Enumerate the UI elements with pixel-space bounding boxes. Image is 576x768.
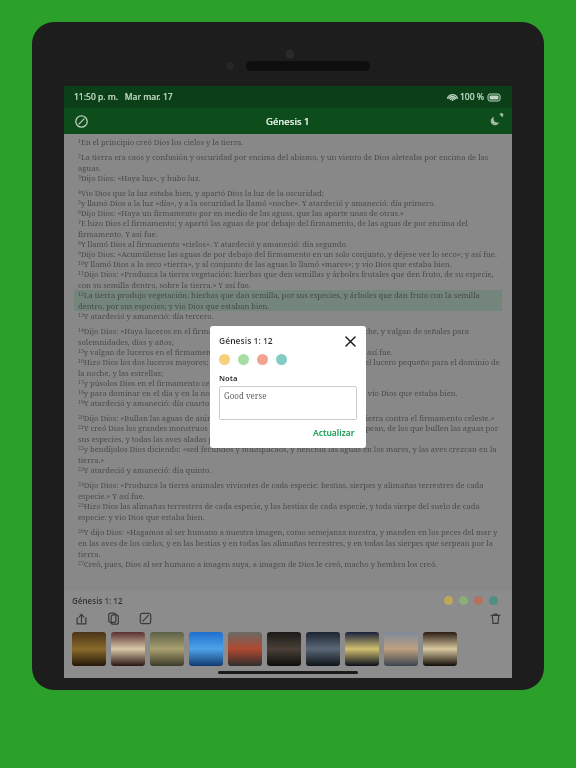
button[interactable]: 4Vio Dios que la luz estaba bien, y apar… <box>74 188 502 198</box>
staticText: 18y para dominar en el día y en la noche… <box>78 388 502 398</box>
staticText: 22y bendíjolos Dios diciendo: «sed fecun… <box>78 444 502 465</box>
staticText: 2La tierra era caos y confusión y oscuri… <box>78 152 502 173</box>
button[interactable]: 25Hizo Dios las alimañas terrestres de c… <box>74 501 502 522</box>
staticText: 12La tierra produjo vegetación: hierbas … <box>78 290 502 311</box>
button[interactable]: 16Hizo Dios los dos luceros mayores; el … <box>74 357 502 378</box>
button[interactable]: 27Creó, pues, Dios al ser humano a image… <box>74 559 502 569</box>
staticText: 6Dijo Dios: «Haya un firmamento por en m… <box>78 208 502 218</box>
button[interactable]: Background image <box>72 632 106 666</box>
button[interactable]: Copy <box>104 609 122 627</box>
staticText: 24Dijo Dios: «Produzca la tierra animale… <box>78 480 502 501</box>
button[interactable]: Background image <box>228 632 262 666</box>
button[interactable]: 26Y dijo Dios: «Hagamos al ser humano a … <box>74 527 502 559</box>
staticText: 8Y llamó Dios al firmamento «cielos». Y … <box>78 239 502 249</box>
button[interactable]: Highlight color <box>238 354 249 365</box>
button[interactable]: 11Dijo Dios: «Produzca la tierra vegetac… <box>74 269 502 290</box>
button[interactable]: Highlight color <box>219 354 230 365</box>
button[interactable]: Highlight color <box>444 596 453 605</box>
button[interactable]: 8Y llamó Dios al firmamento «cielos». Y … <box>74 239 502 249</box>
staticText: 1En el principio creó Dios los cielos y … <box>78 137 502 147</box>
button[interactable]: Close <box>343 334 357 348</box>
button[interactable]: 7E hizo Dios el firmamento; y apartó las… <box>74 218 502 239</box>
staticText: Génesis 1 <box>266 115 310 128</box>
button[interactable]: 5y llamó Dios a la luz «día», y a la osc… <box>74 198 502 208</box>
staticText: 10Y llamó Dios a lo seco «tierra», y al … <box>78 259 502 269</box>
button[interactable]: Background image <box>189 632 223 666</box>
staticText: 11Dijo Dios: «Produzca la tierra vegetac… <box>78 269 502 290</box>
staticText: 15y valgan de luceros en el firmamento c… <box>78 347 502 357</box>
button[interactable]: Highlight color <box>474 596 483 605</box>
staticText: 7E hizo Dios el firmamento; y apartó las… <box>78 218 502 239</box>
button[interactable]: 18y para dominar en el día y en la noche… <box>74 388 502 398</box>
staticText: 17y púsolos Dios en el firmamento celest… <box>78 378 502 388</box>
button[interactable]: Background image <box>150 632 184 666</box>
staticText: 23Y atardeció y amaneció: día quinto. <box>78 465 502 475</box>
button[interactable]: 21Y creó Dios los grandes monstruos mari… <box>74 423 502 444</box>
button[interactable]: Share <box>72 609 90 627</box>
button[interactable]: Actualizar <box>311 426 357 440</box>
button[interactable]: Background image <box>345 632 379 666</box>
button[interactable]: Background image <box>267 632 301 666</box>
staticText: Génesis 1: 12 <box>219 335 273 347</box>
button[interactable]: 23Y atardeció y amaneció: día quinto. <box>74 465 502 475</box>
staticText: 16Hizo Dios los dos luceros mayores; el … <box>78 357 502 378</box>
button[interactable]: Edit <box>136 609 154 627</box>
staticText: 9Dijo Dios: «Acumúlense las aguas de por… <box>78 249 502 259</box>
button[interactable]: Background image <box>306 632 340 666</box>
button[interactable]: 13Y atardeció y amaneció: día tercero. <box>74 311 502 321</box>
button[interactable]: Highlight color <box>276 354 287 365</box>
staticText: Actualizar <box>313 427 355 439</box>
button[interactable]: 20Dijo Dios: «Bullan las aguas de animal… <box>74 413 502 423</box>
button[interactable]: 22y bendíjolos Dios diciendo: «sed fecun… <box>74 444 502 465</box>
staticText: 26Y dijo Dios: «Hagamos al ser humano a … <box>78 527 502 559</box>
button[interactable]: 14Dijo Dios: «Haya luceros en el firmame… <box>74 326 502 347</box>
button[interactable]: 10Y llamó Dios a lo seco «tierra», y al … <box>74 259 502 269</box>
button[interactable]: 17y púsolos Dios en el firmamento celest… <box>74 378 502 388</box>
staticText: 19Y atardeció y amaneció: día cuarto. <box>78 398 502 408</box>
staticText: Génesis 1: 12 <box>72 595 123 606</box>
button[interactable]: 1En el principio creó Dios los cielos y … <box>74 137 502 147</box>
button[interactable]: Background image <box>384 632 418 666</box>
staticText: Good verse <box>224 390 267 401</box>
staticText: 4Vio Dios que la luz estaba bien, y apar… <box>78 188 502 198</box>
button[interactable]: 15y valgan de luceros en el firmamento c… <box>74 347 502 357</box>
button[interactable]: Highlight color <box>459 596 468 605</box>
button[interactable]: Background image <box>423 632 457 666</box>
button[interactable]: Highlight color <box>489 596 498 605</box>
staticText: Nota <box>219 373 238 383</box>
button[interactable]: Good verse <box>219 386 357 420</box>
staticText: 25Hizo Dios las alimañas terrestres de c… <box>78 501 502 522</box>
button[interactable]: Dark mode <box>486 112 504 130</box>
button[interactable]: Background image <box>111 632 145 666</box>
button[interactable]: 6Dijo Dios: «Haya un firmamento por en m… <box>74 208 502 218</box>
staticText: 14Dijo Dios: «Haya luceros en el firmame… <box>78 326 502 347</box>
button[interactable]: 2La tierra era caos y confusión y oscuri… <box>74 152 502 173</box>
staticText: 21Y creó Dios los grandes monstruos mari… <box>78 423 502 444</box>
staticText: 13Y atardeció y amaneció: día tercero. <box>78 311 502 321</box>
staticText: 11:50 p. m. Mar mar. 17 <box>74 91 173 103</box>
button[interactable]: 19Y atardeció y amaneció: día cuarto. <box>74 398 502 408</box>
button[interactable]: 24Dijo Dios: «Produzca la tierra animale… <box>74 480 502 501</box>
button[interactable]: Delete <box>486 609 504 627</box>
button[interactable]: Highlight color <box>257 354 268 365</box>
button[interactable]: 3Dijo Dios: «Haya luz», y hubo luz. <box>74 173 502 183</box>
button[interactable]: 9Dijo Dios: «Acumúlense las aguas de por… <box>74 249 502 259</box>
button[interactable]: 12La tierra produjo vegetación: hierbas … <box>74 290 502 311</box>
staticText: 100 % <box>460 91 485 103</box>
staticText: 20Dijo Dios: «Bullan las aguas de animal… <box>78 413 502 423</box>
staticText: 3Dijo Dios: «Haya luz», y hubo luz. <box>78 173 502 183</box>
staticText: 5y llamó Dios a la luz «día», y a la osc… <box>78 198 502 208</box>
button[interactable]: Menu <box>72 112 90 130</box>
staticText: 27Creó, pues, Dios al ser humano a image… <box>78 559 502 569</box>
